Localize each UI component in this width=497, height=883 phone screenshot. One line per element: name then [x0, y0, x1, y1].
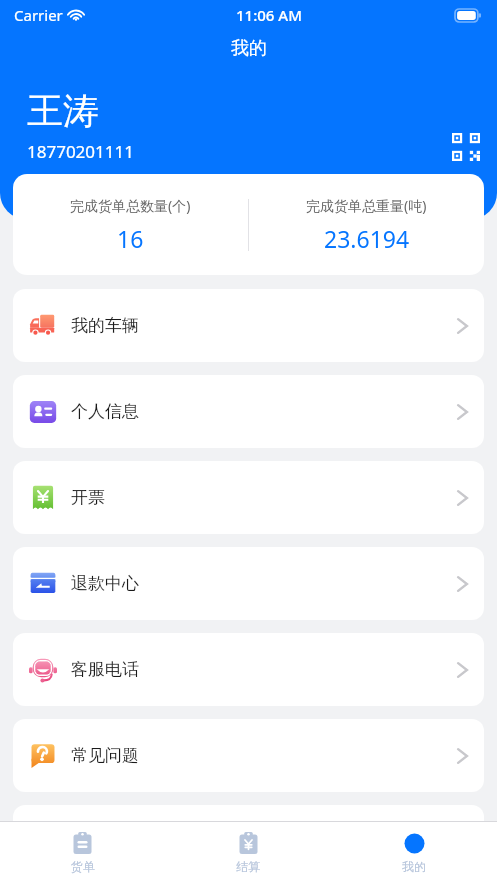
- staticText: 退款中心: [71, 573, 139, 594]
- staticText: 王涛: [27, 88, 99, 133]
- button[interactable]: 货单: [0, 822, 165, 883]
- button[interactable]: 结算: [165, 822, 331, 883]
- button[interactable]: 退款中心: [13, 547, 484, 620]
- staticText: 18770201111: [27, 140, 134, 163]
- staticText: 完成货单总重量(吨): [306, 196, 427, 215]
- staticText: 关于我们: [71, 831, 139, 852]
- button[interactable]: 我的: [331, 822, 497, 883]
- button[interactable]: 开票: [13, 461, 484, 534]
- staticText: 我的: [231, 37, 267, 60]
- staticText: 个人信息: [71, 401, 139, 422]
- staticText: 11:06 AM: [236, 5, 302, 25]
- staticText: Carrier: [14, 5, 63, 25]
- staticText: 23.6194: [324, 223, 410, 254]
- staticText: 结算: [236, 859, 260, 874]
- button[interactable]: 客服电话: [13, 633, 484, 706]
- staticText: 客服电话: [71, 659, 139, 680]
- button[interactable]: 个人信息: [13, 375, 484, 448]
- staticText: 我的车辆: [71, 315, 139, 336]
- staticText: 完成货单总数量(个): [70, 196, 191, 215]
- staticText: 16: [117, 223, 144, 254]
- staticText: 货单: [71, 859, 95, 874]
- staticText: 常见问题: [71, 745, 139, 766]
- button[interactable]: 关于我们: [13, 805, 484, 878]
- staticText: 开票: [71, 487, 105, 508]
- button[interactable]: 扫一扫: [452, 133, 480, 161]
- button[interactable]: 常见问题: [13, 719, 484, 792]
- button[interactable]: 我的车辆: [13, 289, 484, 362]
- staticText: 我的: [402, 859, 426, 874]
